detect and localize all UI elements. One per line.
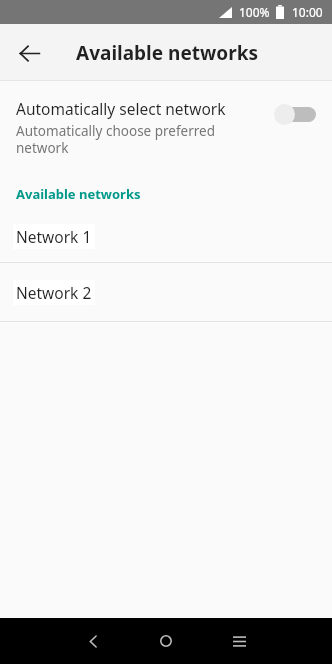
staticText: Network 1 <box>16 226 92 247</box>
staticText: Automatically choose preferred network <box>16 122 260 157</box>
staticText: 100% <box>239 4 270 20</box>
staticText: Automatically select network <box>16 98 226 119</box>
button[interactable]: Automatically select network <box>0 81 332 163</box>
staticText: Available networks <box>16 185 141 203</box>
button[interactable]: Back <box>73 621 113 661</box>
button[interactable]: Network 1 <box>0 224 332 249</box>
staticText: Network 2 <box>16 282 92 303</box>
staticText: Available networks <box>76 40 258 66</box>
button[interactable]: Recent apps <box>219 621 259 661</box>
staticText: 10:00 <box>292 4 323 20</box>
button[interactable]: Automatically select network toggle <box>274 102 316 126</box>
button[interactable]: Back <box>9 33 49 73</box>
button[interactable]: Network 2 <box>0 280 332 305</box>
button[interactable]: Home <box>146 621 186 661</box>
